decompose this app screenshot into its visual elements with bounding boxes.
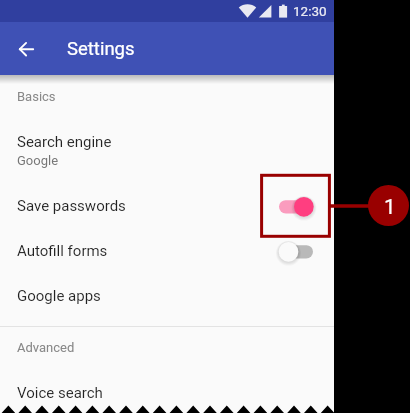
staticText: 12:30 [293,3,327,19]
staticText: 1 [384,195,396,219]
staticText: Settings [67,38,135,60]
staticText: Search engine [17,133,112,151]
other: Off [279,240,313,262]
button[interactable]: Search engine [0,118,334,183]
button[interactable]: Google apps [0,273,334,318]
button[interactable]: Autofill forms [0,228,334,273]
staticText: Voice search [17,384,103,402]
staticText: Basics [17,89,56,104]
staticText: Advanced [17,340,75,355]
other: On [279,195,313,217]
staticText: Google apps [17,287,101,305]
button[interactable]: Save passwords [0,183,334,228]
staticText: Save passwords [17,197,126,215]
button[interactable]: Voice search [0,368,334,413]
staticText: Google [17,153,59,168]
button[interactable]: Navigate up [7,30,45,68]
staticText: Autofill forms [17,242,108,260]
button[interactable]: Annotation 1 [368,185,409,226]
